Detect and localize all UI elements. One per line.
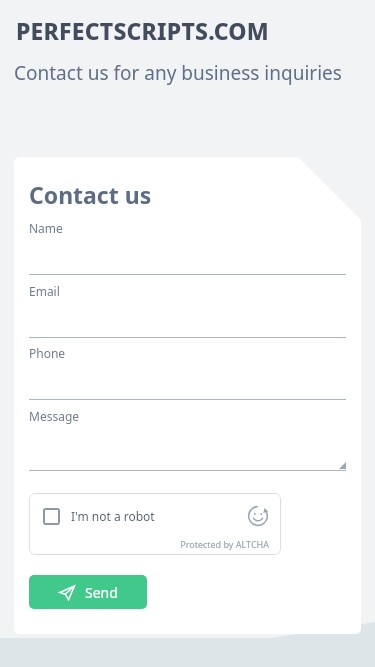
button[interactable]: I'm not a robot checkbox	[43, 508, 60, 525]
staticText: I'm not a robot	[71, 508, 155, 524]
button[interactable]: Email	[29, 283, 346, 338]
staticText: Message	[29, 408, 80, 424]
staticText: Protected by ALTCHA	[180, 538, 269, 550]
button[interactable]: Send	[29, 575, 147, 609]
staticText: Contact us for any business inquiries	[14, 60, 344, 86]
staticText: Phone	[29, 345, 66, 361]
button[interactable]: I'm not a robot checkbox	[29, 493, 281, 555]
staticText: Contact us	[29, 179, 152, 210]
staticText: Name	[29, 220, 63, 236]
button[interactable]: Message	[29, 408, 346, 471]
other: Reload captcha	[247, 505, 269, 527]
button[interactable]: Name	[29, 220, 346, 275]
staticText: PERFECTSCRIPTS.COM	[16, 15, 269, 46]
staticText: Send	[85, 583, 118, 602]
button[interactable]: Phone	[29, 345, 346, 400]
staticText: Email	[29, 283, 60, 299]
